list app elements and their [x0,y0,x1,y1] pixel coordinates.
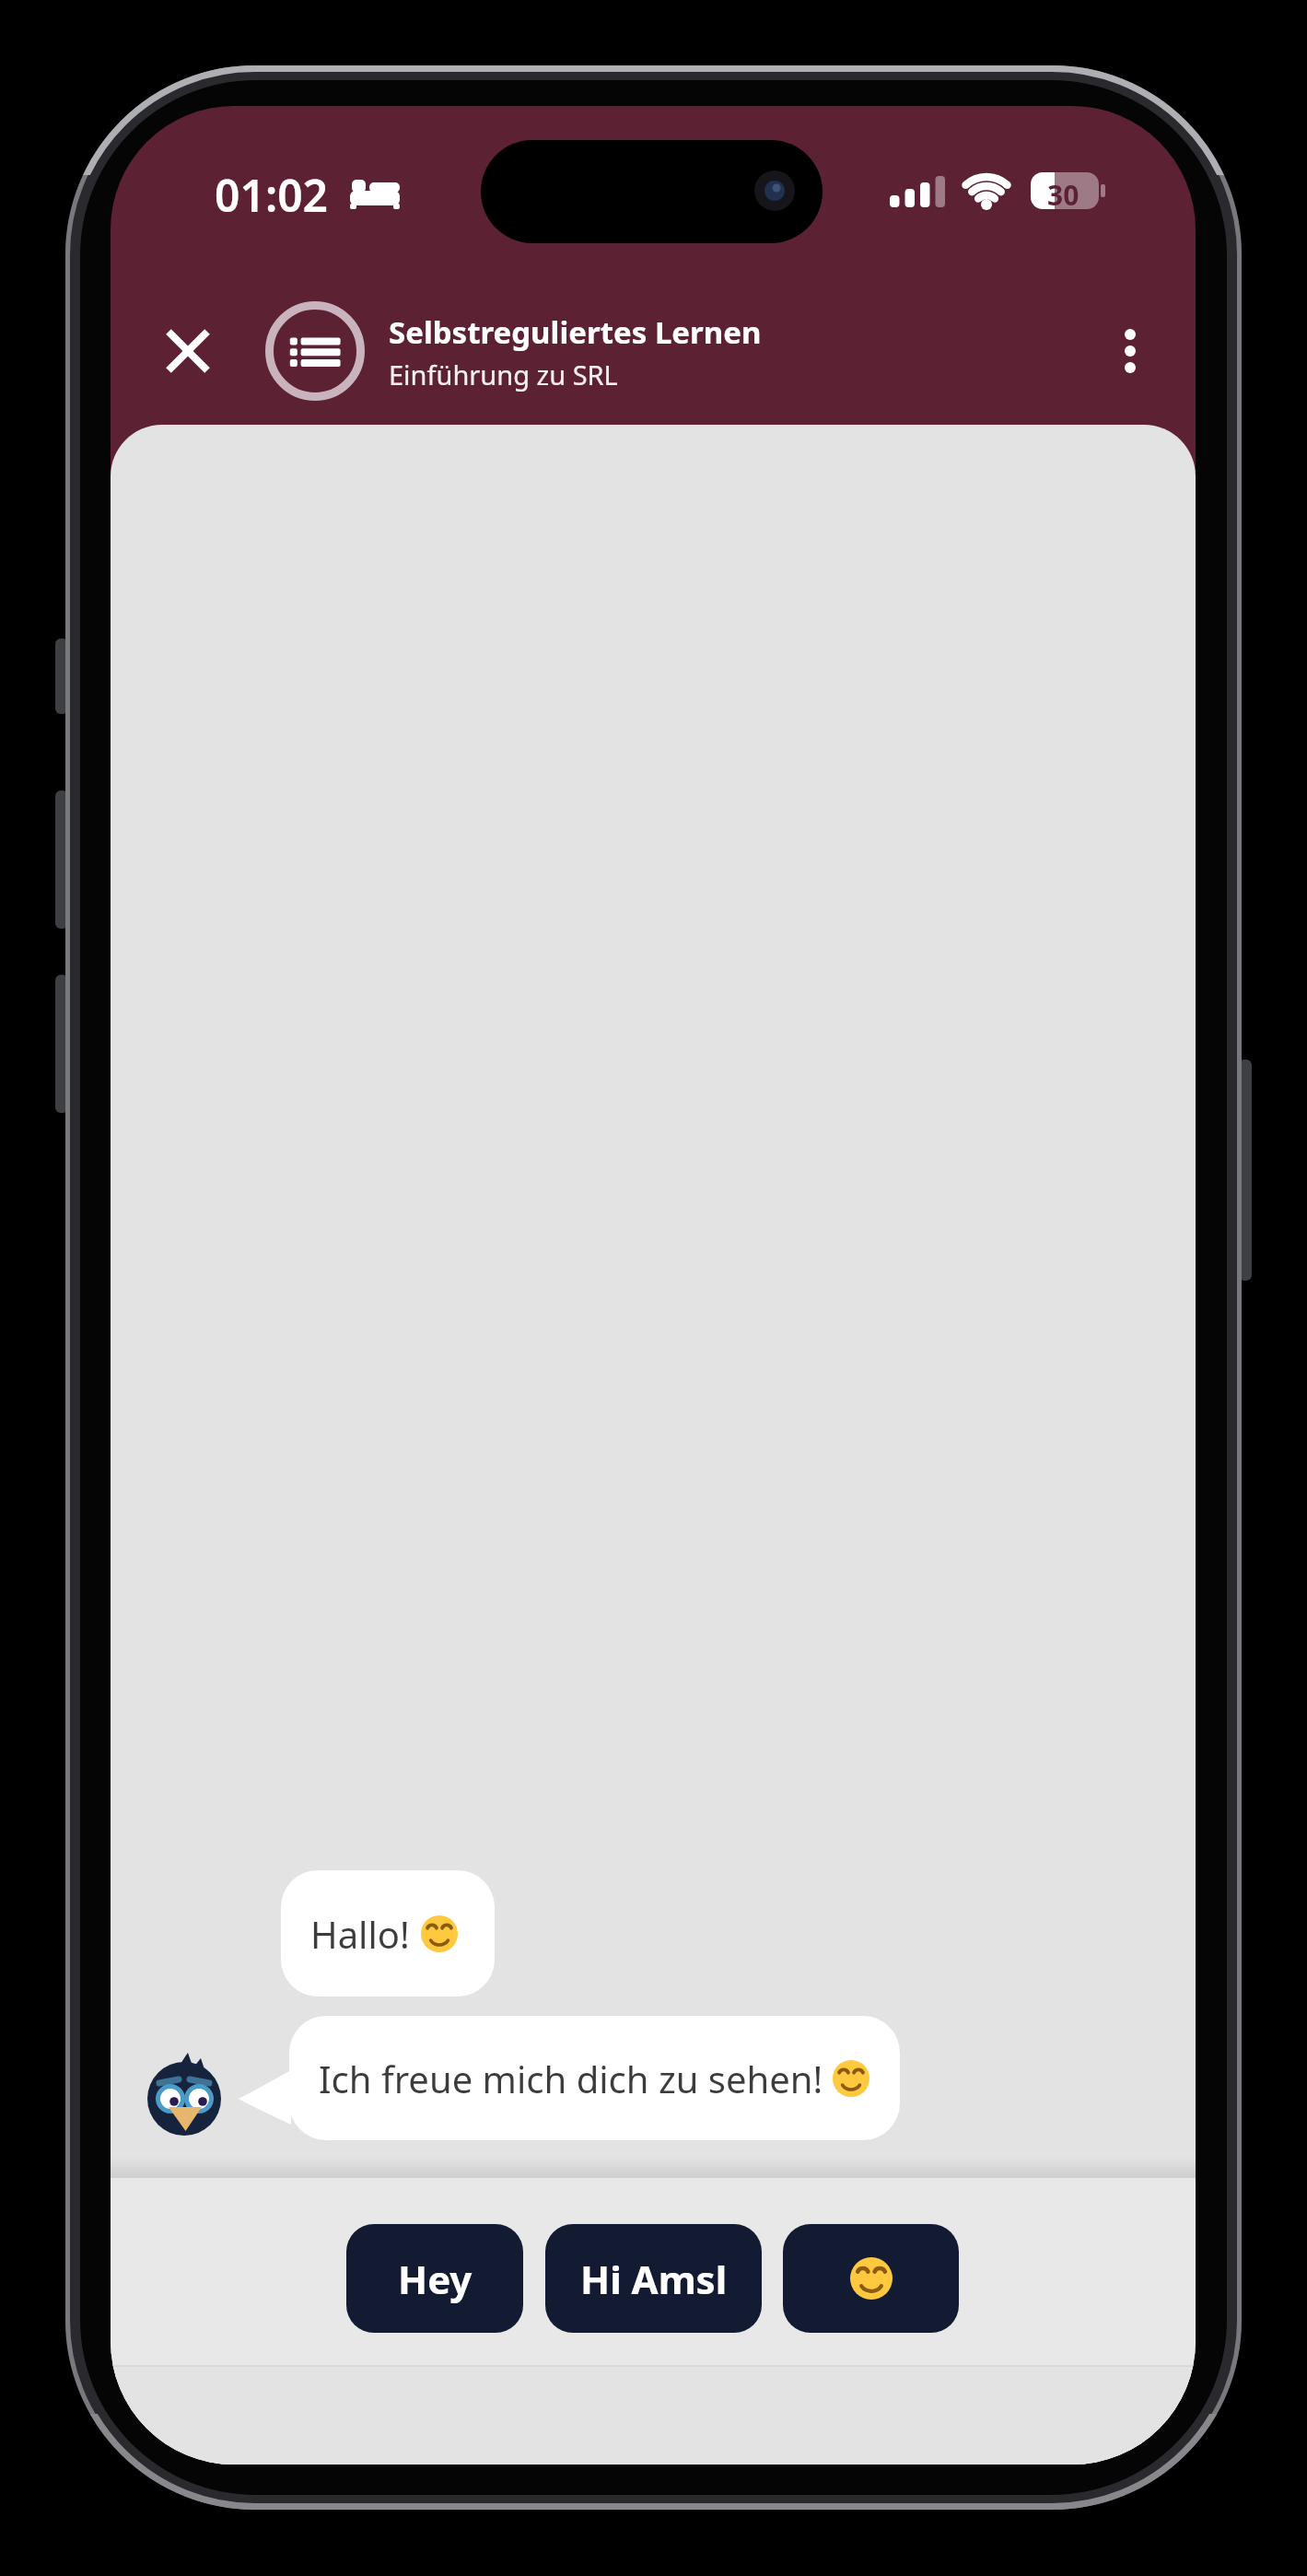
button[interactable] [163,325,215,377]
staticText: 01:02 [215,165,329,225]
button[interactable] [783,2224,959,2333]
button[interactable]: Hi Amsl [545,2224,762,2333]
button[interactable] [265,301,365,401]
staticText: 30 [1047,176,1079,214]
staticText: Ich freue mich dich zu sehen! [319,2054,823,2103]
staticText: Hi Amsl [580,2253,728,2305]
staticText: Einführung zu SRL [389,357,618,392]
staticText: Hallo! [310,1909,410,1959]
button[interactable]: Hey [346,2224,523,2333]
button[interactable] [1105,314,1155,388]
staticText: Hey [398,2253,473,2305]
staticText: Selbstreguliertes Lernen [389,311,762,353]
